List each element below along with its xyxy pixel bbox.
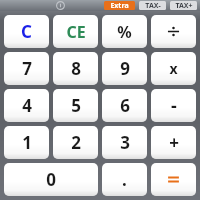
staticText: -: [171, 93, 177, 118]
staticText: C: [21, 20, 32, 43]
button[interactable]: 4: [4, 89, 49, 122]
button[interactable]: [151, 163, 196, 196]
staticText: 9: [120, 57, 130, 80]
staticText: %: [117, 21, 132, 43]
button[interactable]: .: [102, 163, 147, 196]
button[interactable]: %: [102, 15, 147, 48]
staticText: TAX-: [145, 1, 161, 10]
staticText: CE: [66, 21, 86, 43]
button[interactable]: 2: [53, 126, 98, 159]
button[interactable]: -: [151, 89, 196, 122]
button[interactable]: CE: [53, 15, 98, 48]
button[interactable]: 1: [4, 126, 49, 159]
button[interactable]: 5: [53, 89, 98, 122]
staticText: 3: [120, 131, 130, 154]
button[interactable]: 8: [53, 52, 98, 85]
staticText: 0: [46, 168, 56, 191]
button[interactable]: 0: [4, 163, 98, 196]
button[interactable]: 6: [102, 89, 147, 122]
button[interactable]: Info: [56, 1, 65, 10]
button[interactable]: C: [4, 15, 49, 48]
button[interactable]: [151, 15, 196, 48]
button[interactable]: TAX+: [170, 1, 197, 10]
staticText: x: [169, 59, 178, 78]
button[interactable]: TAX-: [139, 1, 166, 10]
staticText: Extra: [110, 1, 129, 10]
button[interactable]: 9: [102, 52, 147, 85]
button[interactable]: Extra: [104, 1, 135, 10]
staticText: 7: [22, 57, 32, 80]
staticText: TAX+: [175, 1, 193, 10]
staticText: 2: [71, 131, 81, 154]
button[interactable]: x: [151, 52, 196, 85]
staticText: 1: [22, 131, 32, 154]
staticText: .: [122, 168, 127, 191]
button[interactable]: +: [151, 126, 196, 159]
button[interactable]: 7: [4, 52, 49, 85]
staticText: 4: [22, 94, 32, 117]
staticText: 6: [120, 94, 130, 117]
staticText: 8: [71, 57, 81, 80]
button[interactable]: 3: [102, 126, 147, 159]
staticText: +: [169, 131, 179, 154]
staticText: 5: [71, 94, 81, 117]
